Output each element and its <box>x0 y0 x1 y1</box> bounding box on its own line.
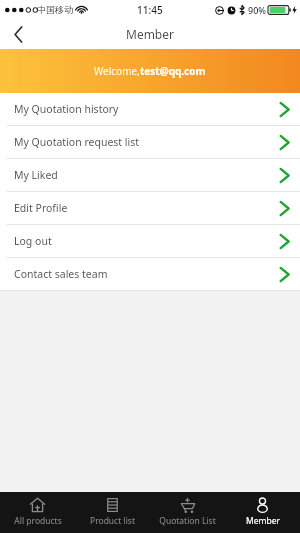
staticText: Member <box>126 26 174 42</box>
button[interactable]: My Quotation request list <box>0 126 300 158</box>
staticText: My Liked <box>14 168 58 182</box>
button[interactable]: My Quotation history <box>0 93 300 125</box>
button[interactable]: Edit Profile <box>0 192 300 224</box>
staticText: 11:45 <box>137 3 163 17</box>
staticText: My Quotation request list <box>14 135 140 149</box>
button[interactable]: Contact sales team <box>0 258 300 290</box>
button[interactable]: All products <box>0 492 75 533</box>
button[interactable]: Quotation List <box>150 492 225 533</box>
staticText: Product list <box>90 515 135 527</box>
staticText: Welcome, <box>94 64 140 78</box>
staticText: Edit Profile <box>14 201 68 215</box>
button[interactable]: Member <box>225 492 300 533</box>
staticText: Quotation List <box>159 515 216 527</box>
button[interactable]: Back <box>0 19 36 49</box>
staticText: All products <box>14 515 62 527</box>
button[interactable]: Log out <box>0 225 300 257</box>
staticText: 90% <box>248 4 266 16</box>
staticText: Member <box>246 515 280 527</box>
staticText: Log out <box>14 234 52 248</box>
staticText: test@qq.com <box>140 64 206 78</box>
staticText: 中国移动 <box>37 4 73 15</box>
button[interactable]: Product list <box>75 492 150 533</box>
button[interactable]: My Liked <box>0 159 300 191</box>
staticText: My Quotation history <box>14 102 119 116</box>
staticText: Contact sales team <box>14 267 108 281</box>
